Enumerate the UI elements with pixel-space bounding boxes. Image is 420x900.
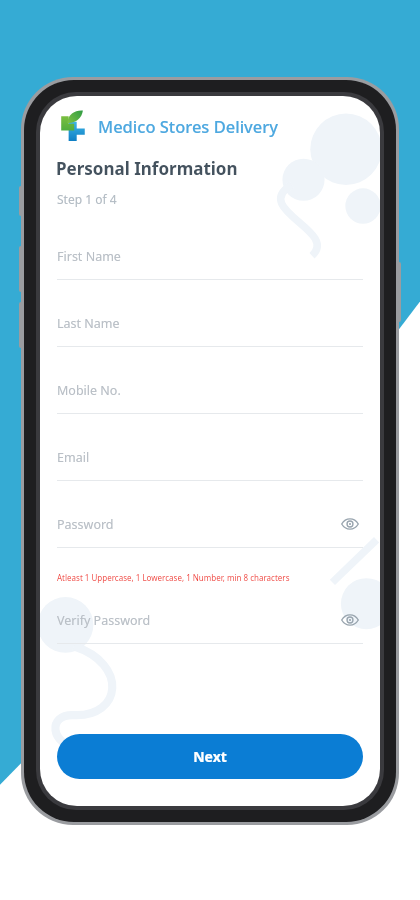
button[interactable]: Show password [337,511,363,537]
button[interactable]: Next [57,734,363,779]
staticText: Last Name [57,315,363,332]
button[interactable]: Last Name [57,300,363,367]
button[interactable]: Password [57,501,363,568]
staticText: Verify Password [57,612,337,629]
staticText: Personal Information [56,157,238,180]
staticText: Atleast 1 Uppercase, 1 Lowercase, 1 Numb… [57,572,290,583]
staticText: Next [193,747,227,766]
staticText: Password [57,516,337,533]
staticText: Mobile No. [57,382,363,399]
button[interactable]: Show password [337,607,363,633]
button[interactable]: Medico Stores Delivery [55,110,380,141]
button[interactable]: First Name [57,233,363,300]
button[interactable]: Verify Password [57,597,363,664]
staticText: Step 1 of 4 [57,191,117,207]
staticText: Email [57,449,363,466]
staticText: Medico Stores Delivery [98,115,278,137]
button[interactable]: Email [57,434,363,501]
button[interactable]: Mobile No. [57,367,363,434]
staticText: First Name [57,248,363,265]
